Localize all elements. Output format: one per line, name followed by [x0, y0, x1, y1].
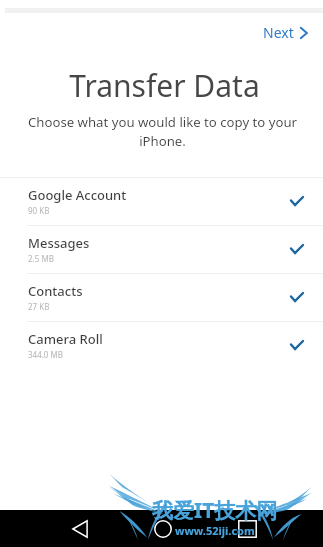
staticText: 344.0 MB [28, 349, 63, 360]
staticText: Next [263, 23, 294, 42]
button[interactable]: Camera Roll [0, 322, 323, 369]
button[interactable]: Back [62, 510, 98, 547]
staticText: Transfer Data [3, 65, 323, 106]
button[interactable]: Google Account [0, 178, 323, 225]
staticText: Messages [28, 234, 90, 252]
staticText: Camera Roll [28, 330, 103, 348]
button[interactable]: Contacts [0, 274, 323, 321]
staticText: 2.5 MB [28, 253, 54, 264]
button[interactable]: Next [258, 19, 313, 46]
staticText: 90 KB [28, 205, 50, 216]
staticText: www.52iji.com [175, 523, 255, 538]
button[interactable]: Home [145, 510, 181, 547]
staticText: Contacts [28, 282, 83, 300]
staticText: 27 KB [28, 301, 50, 312]
staticText: Choose what you would like to copy to yo… [27, 113, 298, 150]
staticText: Google Account [28, 186, 127, 204]
staticText: 我爱IT技术网 [152, 496, 278, 525]
button[interactable]: Messages [0, 226, 323, 273]
button[interactable]: Recent apps [229, 510, 265, 547]
